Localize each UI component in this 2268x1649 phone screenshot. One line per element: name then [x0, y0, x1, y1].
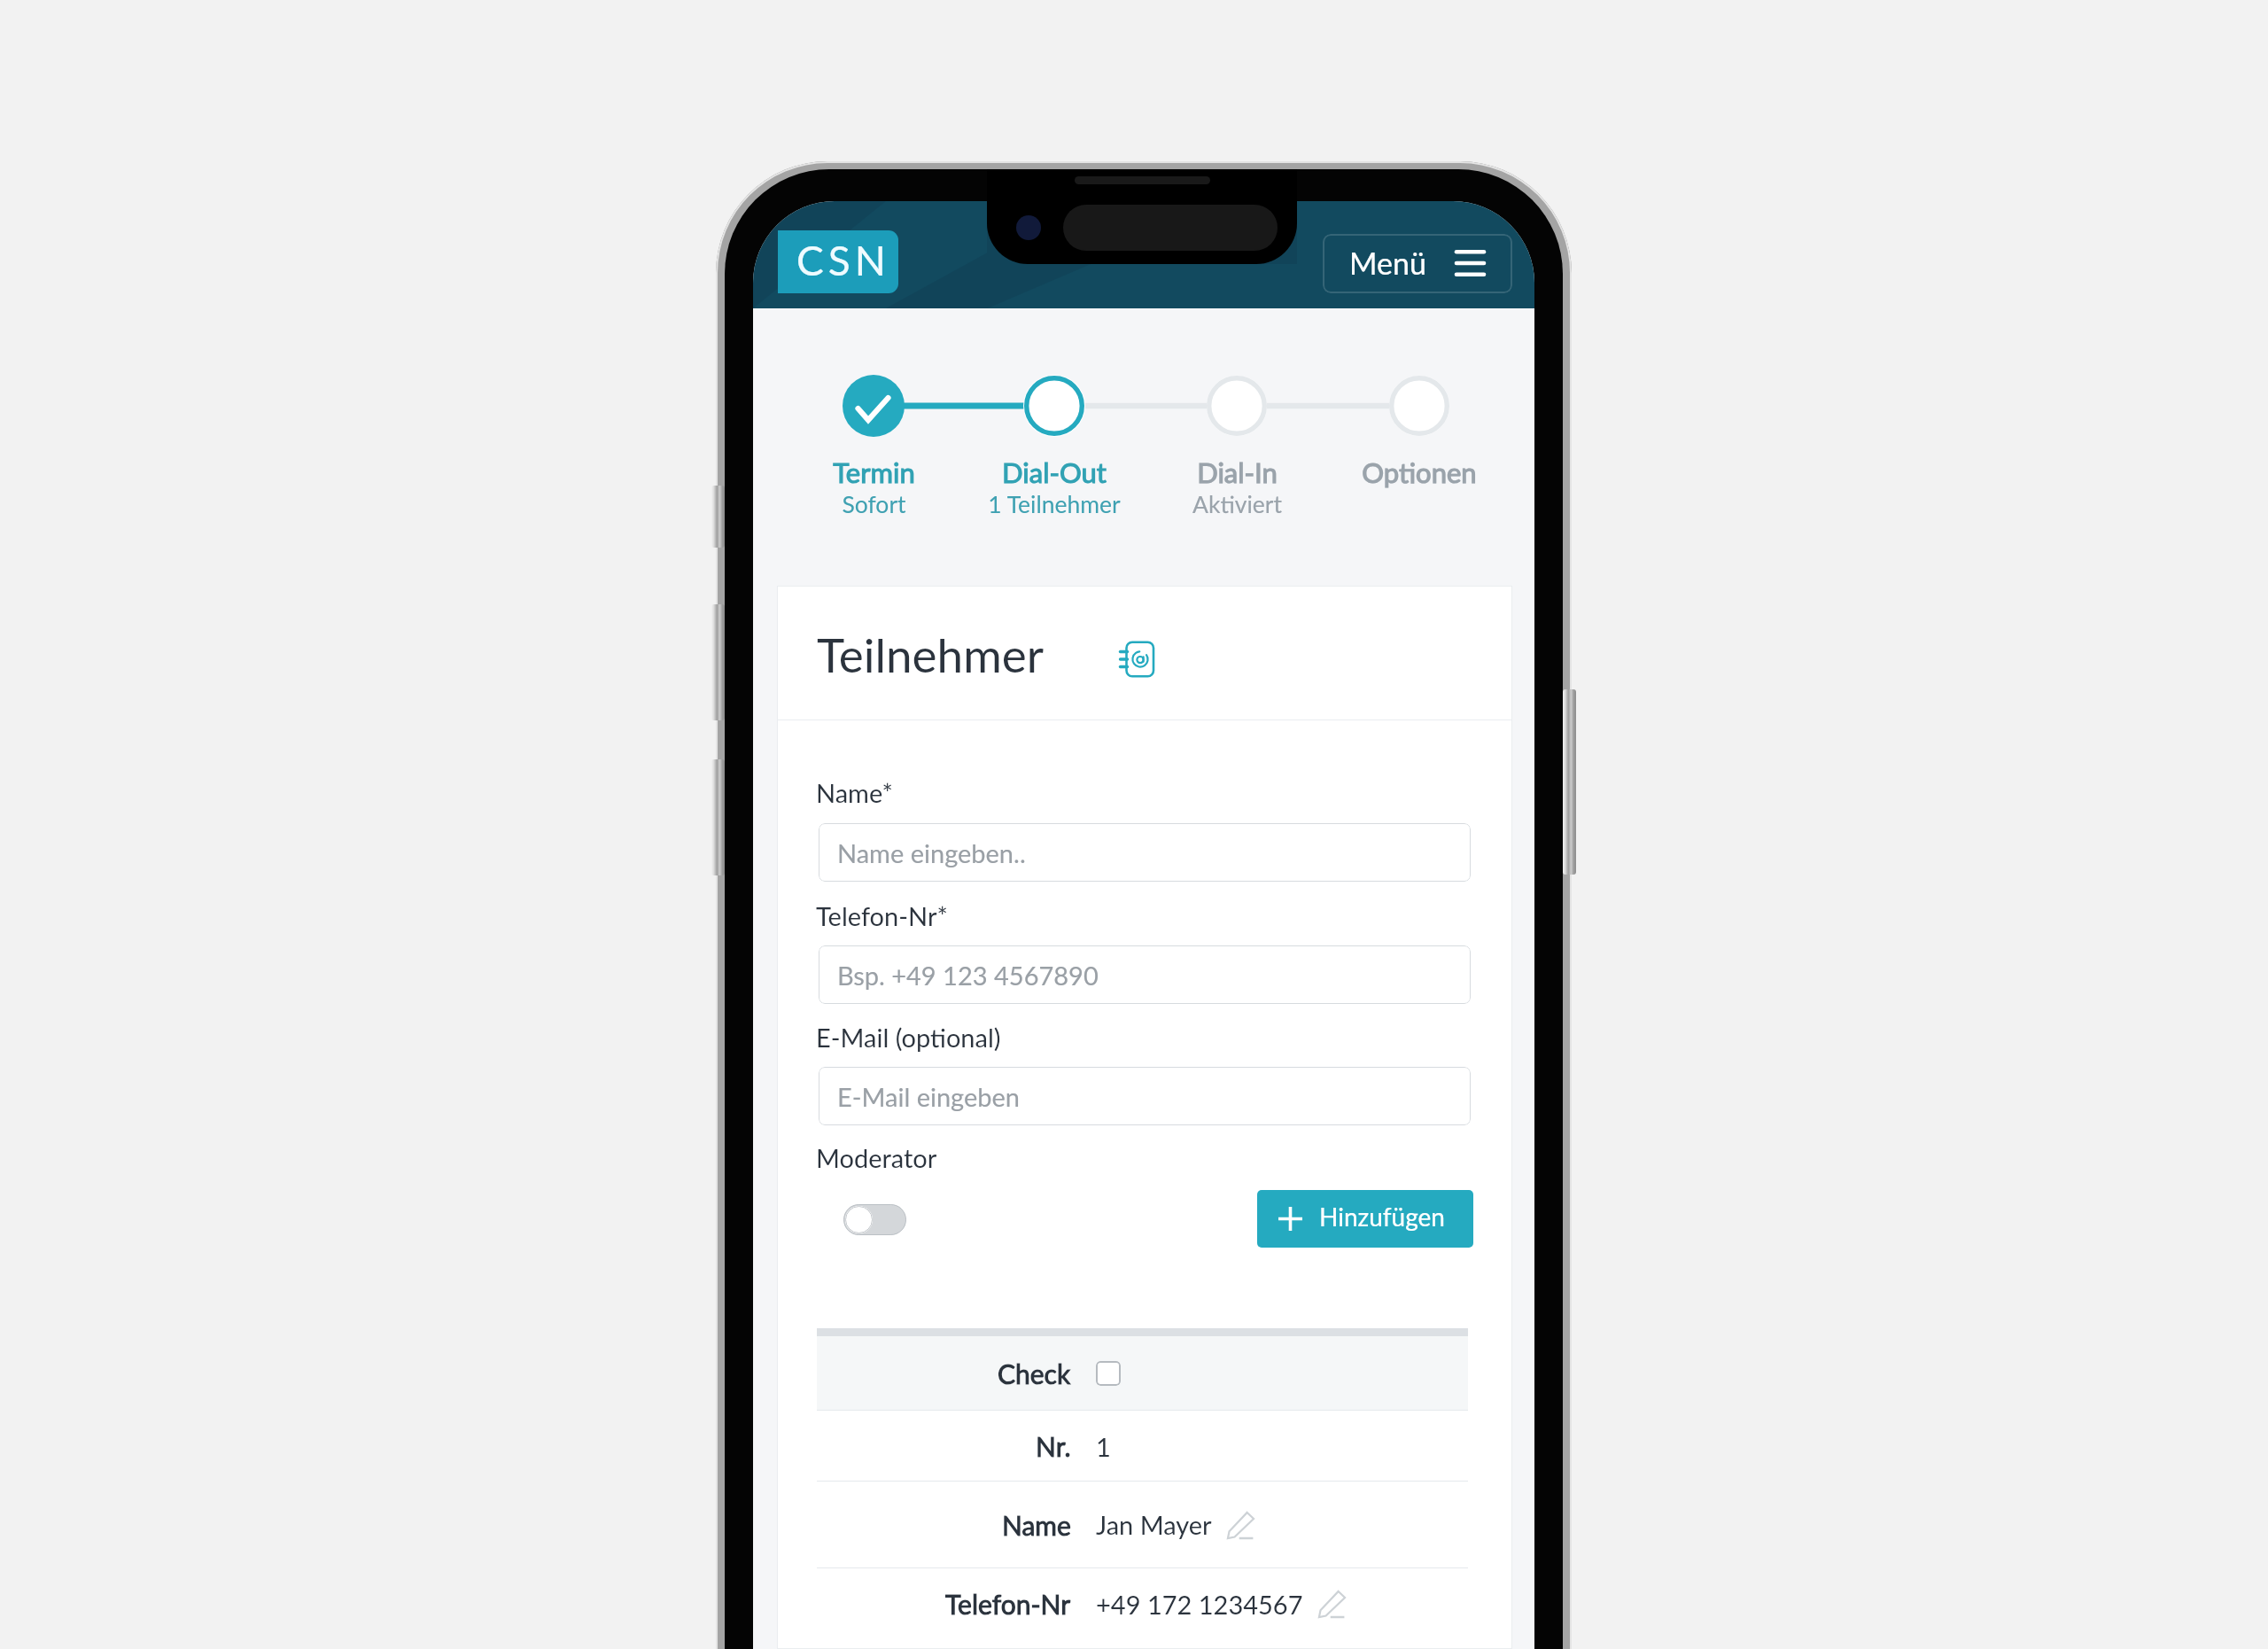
- staticText: Jan Mayer: [1096, 1509, 1212, 1540]
- button[interactable]: Name: [817, 1482, 1468, 1567]
- staticText: +49 172 1234567: [1096, 1589, 1303, 1620]
- staticText: Name*: [816, 777, 893, 808]
- staticText: Name: [1002, 1509, 1071, 1541]
- button[interactable]: Menü: [1323, 234, 1512, 293]
- staticText: Bsp. +49 123 4567890: [837, 960, 1099, 991]
- staticText: Check: [998, 1357, 1071, 1389]
- button[interactable]: Dial-Out: [948, 455, 1161, 518]
- staticText: Aktiviert: [1192, 490, 1282, 518]
- staticText: Nr.: [1036, 1430, 1071, 1462]
- staticText: Menü: [1349, 245, 1426, 281]
- staticText: Termin: [833, 455, 915, 488]
- button[interactable]: E-Mail eingeben: [819, 1067, 1471, 1125]
- button[interactable]: Optionen: [1313, 455, 1526, 488]
- button[interactable]: Termin: [767, 455, 980, 518]
- button[interactable]: CSN Home: [778, 230, 898, 293]
- staticText: E-Mail eingeben: [837, 1081, 1021, 1112]
- button[interactable]: Bearbeiten: [1224, 1509, 1256, 1541]
- button[interactable]: Telefon-Nr: [817, 1568, 1468, 1639]
- button[interactable]: Nr.: [817, 1411, 1468, 1482]
- staticText: 1 Teilnehmer: [988, 490, 1121, 518]
- staticText: CSN: [796, 236, 890, 284]
- button[interactable]: Name eingeben..: [819, 823, 1471, 882]
- button[interactable]: Bearbeiten: [1316, 1588, 1348, 1620]
- staticText: Teilnehmer: [817, 626, 1045, 683]
- button[interactable]: Moderator umschalten: [843, 1204, 906, 1235]
- staticText: Hinzufügen: [1319, 1202, 1445, 1232]
- button[interactable]: Bsp. +49 123 4567890: [819, 945, 1471, 1004]
- staticText: Telefon-Nr*: [816, 900, 948, 931]
- staticText: Telefon-Nr: [945, 1588, 1071, 1620]
- staticText: Moderator: [816, 1142, 937, 1173]
- staticText: Sofort: [842, 490, 906, 518]
- staticText: E-Mail (optional): [816, 1022, 1001, 1053]
- staticText: Name eingeben..: [837, 837, 1026, 868]
- button[interactable]: Adressbuch: [1114, 636, 1160, 682]
- button[interactable]: Dial-In: [1130, 455, 1343, 518]
- button[interactable]: Alle auswählen: [1096, 1361, 1121, 1386]
- staticText: Optionen: [1362, 455, 1477, 488]
- button[interactable]: Check: [817, 1336, 1468, 1411]
- staticText: Dial-In: [1197, 455, 1278, 488]
- staticText: Dial-Out: [1002, 455, 1107, 488]
- staticText: 1: [1096, 1431, 1111, 1462]
- button[interactable]: Hinzufügen: [1257, 1190, 1473, 1248]
